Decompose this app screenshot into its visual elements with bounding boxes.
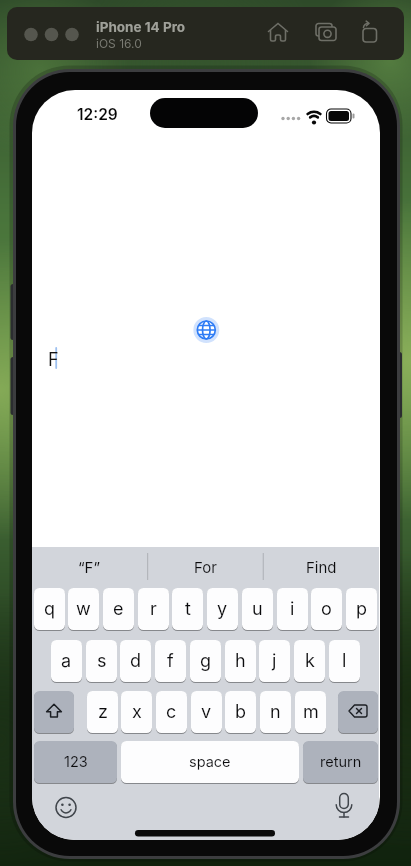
button[interactable]: x	[121, 691, 152, 733]
button[interactable]: d	[120, 640, 151, 682]
button[interactable]: c	[156, 691, 187, 733]
staticText: f	[167, 650, 174, 672]
staticText: h	[235, 650, 246, 672]
button[interactable]: f	[155, 640, 186, 682]
button[interactable]: s	[86, 640, 117, 682]
button[interactable]: g	[190, 640, 221, 682]
button[interactable]: r	[138, 588, 169, 630]
button[interactable]	[266, 21, 290, 45]
button[interactable]: space	[121, 741, 299, 783]
staticText: 123	[64, 753, 88, 771]
button[interactable]: j	[259, 640, 290, 682]
staticText: k	[305, 650, 315, 672]
staticText: e	[113, 598, 124, 620]
staticText: i	[290, 598, 295, 620]
button[interactable]: b	[225, 691, 256, 733]
button[interactable]: q	[34, 588, 65, 630]
button[interactable]: “F”	[32, 548, 147, 586]
staticText: o	[321, 598, 332, 620]
button[interactable]: v	[191, 691, 222, 733]
staticText: j	[272, 650, 277, 672]
button[interactable]: n	[260, 691, 291, 733]
staticText: y	[217, 598, 228, 620]
staticText: s	[97, 650, 107, 672]
staticText: c	[166, 701, 177, 723]
button[interactable]: w	[68, 588, 99, 630]
button[interactable]: e	[103, 588, 134, 630]
button[interactable]: o	[311, 588, 342, 630]
staticText: iOS 16.0	[96, 36, 142, 51]
staticText: g	[200, 650, 212, 672]
button[interactable]: p	[346, 588, 377, 630]
staticText: F	[48, 349, 59, 371]
button[interactable]: Find	[264, 548, 379, 586]
staticText: return	[320, 753, 362, 771]
staticText: iPhone 14 Pro	[96, 19, 186, 35]
staticText: l	[342, 650, 347, 672]
button[interactable]	[314, 22, 338, 46]
staticText: “F”	[78, 558, 101, 576]
staticText: r	[150, 598, 157, 620]
button[interactable]: return	[303, 741, 378, 783]
button[interactable]: a	[51, 640, 82, 682]
button[interactable]	[338, 691, 378, 733]
button[interactable]	[358, 21, 382, 45]
staticText: t	[185, 598, 191, 620]
staticText: Find	[306, 558, 337, 576]
staticText: space	[189, 753, 231, 771]
button[interactable]: k	[294, 640, 325, 682]
staticText: n	[270, 701, 281, 723]
button[interactable]: u	[242, 588, 273, 630]
button[interactable]: t	[172, 588, 203, 630]
button[interactable]: y	[207, 588, 238, 630]
button[interactable]: m	[295, 691, 326, 733]
staticText: p	[356, 598, 368, 620]
staticText: v	[201, 701, 212, 723]
staticText: u	[252, 598, 263, 620]
staticText: w	[76, 598, 91, 620]
button[interactable]: 123	[34, 741, 117, 783]
staticText: d	[130, 650, 142, 672]
staticText: b	[235, 701, 247, 723]
button[interactable]: For	[148, 548, 263, 586]
staticText: For	[194, 558, 217, 576]
staticText: q	[44, 598, 56, 620]
button[interactable]	[34, 691, 74, 733]
staticText: m	[303, 701, 319, 723]
staticText: a	[61, 650, 72, 672]
staticText: z	[98, 701, 108, 723]
button[interactable]: z	[87, 691, 118, 733]
staticText: 12:29	[77, 105, 118, 124]
button[interactable]: i	[277, 588, 308, 630]
button[interactable]: l	[329, 640, 360, 682]
button[interactable]: h	[225, 640, 256, 682]
staticText: x	[132, 701, 142, 723]
